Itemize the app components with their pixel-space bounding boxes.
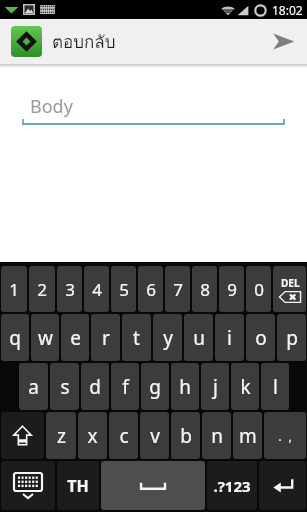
staticText: a [28,374,39,400]
staticText: 8 [200,278,210,301]
button[interactable]: i [215,314,244,361]
button[interactable]: 1 [1,266,27,312]
staticText: d [89,374,101,400]
staticText: b [180,423,192,449]
staticText: l [273,374,278,400]
staticText: r [102,325,110,351]
button[interactable]: v [140,412,169,459]
button[interactable]: o [246,314,275,361]
staticText: .?123 [213,476,251,496]
staticText: i [227,325,232,351]
staticText: TH [67,475,89,497]
button[interactable]: Delete [273,266,306,312]
staticText: f [122,374,129,400]
button[interactable]: TH [57,461,99,510]
button[interactable]: e [61,314,89,361]
button[interactable]: q [1,314,29,361]
button[interactable]: 6 [138,266,163,312]
button[interactable]: r [91,314,120,361]
staticText: 1 [9,278,19,301]
staticText: 9 [227,278,237,301]
button[interactable]: 2 [29,266,55,312]
staticText: 18:02 [272,2,303,18]
button[interactable]: Enter [259,461,306,510]
button[interactable]: p [277,314,306,361]
button[interactable]: l [261,363,289,410]
button[interactable]: 5 [111,266,136,312]
button[interactable]: a [19,363,48,410]
staticText: e [70,325,81,351]
button[interactable]: Send [260,19,307,64]
staticText: 6 [146,278,156,301]
staticText: 5 [119,278,129,301]
staticText: u [193,325,205,351]
staticText: y [163,325,173,351]
staticText: p [286,325,298,351]
staticText: x [87,423,98,449]
staticText: m [239,423,257,449]
button[interactable]: m [233,412,262,459]
staticText: s [60,374,70,400]
button[interactable]: h [171,363,199,410]
button[interactable]: f [111,363,139,410]
button[interactable]: Hide keyboard [1,461,55,510]
button[interactable]: n [202,412,231,459]
button[interactable]: 9 [219,266,244,312]
staticText: g [149,374,161,400]
staticText: 2 [37,278,47,301]
staticText: 0 [254,278,264,301]
button[interactable]: y [153,314,182,361]
button[interactable]: 8 [192,266,217,312]
button[interactable]: t [122,314,151,361]
staticText: ตอบกลับ [52,28,116,55]
button[interactable]: j [201,363,229,410]
button[interactable]: k [231,363,259,410]
button[interactable]: Body [22,92,285,120]
staticText: k [240,374,251,400]
button[interactable]: 0 [246,266,271,312]
button[interactable]: w [31,314,59,361]
button[interactable]: d [81,363,109,410]
button[interactable]: Shift [1,412,44,459]
button[interactable]: 7 [165,266,190,312]
staticText: DEL [281,276,300,290]
staticText: j [213,374,218,400]
staticText: h [179,374,191,400]
staticText: Body [30,94,73,119]
button[interactable]: ตอบกลับ [0,19,260,64]
staticText: v [150,423,160,449]
button[interactable]: .?123 [207,461,257,510]
staticText: n [211,423,223,449]
staticText: o [255,325,267,351]
button[interactable]: c [109,412,138,459]
staticText: c [119,423,129,449]
staticText: 4 [92,278,102,301]
button[interactable]: 3 [57,266,82,312]
staticText: t [133,325,140,351]
button[interactable]: u [184,314,213,361]
staticText: 7 [173,278,183,301]
staticText: q [9,325,21,351]
button[interactable]: 4 [84,266,109,312]
button[interactable]: . , [264,412,306,459]
button[interactable]: s [50,363,79,410]
staticText: z [57,423,66,449]
button[interactable]: g [141,363,169,410]
button[interactable]: Space [101,461,205,510]
button[interactable]: b [171,412,200,459]
button[interactable]: x [78,412,107,459]
staticText: 3 [65,278,75,301]
button[interactable]: z [46,412,76,459]
staticText: . , [278,427,292,445]
staticText: w [38,325,53,351]
